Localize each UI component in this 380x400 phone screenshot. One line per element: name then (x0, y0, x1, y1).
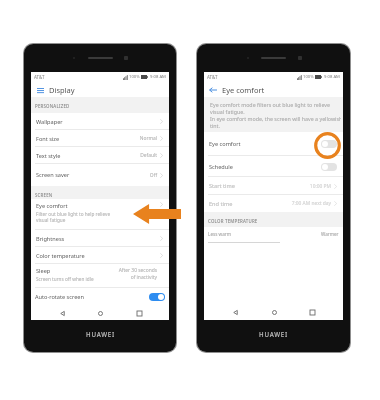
staticText: COLOR TEMPERATURE (208, 218, 258, 224)
button[interactable]: Back (208, 85, 218, 95)
button[interactable]: Color temperature (31, 247, 169, 264)
staticText: Display (49, 85, 75, 95)
staticText: Brightness (36, 235, 65, 243)
button[interactable]: Menu (35, 85, 45, 95)
staticText: Eye comfort mode filters out blue light … (210, 101, 341, 129)
button[interactable]: Text style (31, 147, 169, 164)
button[interactable]: Start time (204, 177, 343, 195)
staticText: Warmer (321, 231, 339, 237)
button[interactable]: Sleep (31, 264, 169, 288)
staticText: After 30 seconds of inactivity (118, 267, 157, 280)
button[interactable]: Recent apps (131, 306, 147, 320)
staticText: AT&T (207, 74, 218, 80)
staticText: HUAWEI (86, 330, 115, 338)
button[interactable]: Back (54, 306, 70, 320)
staticText: Color temperature (36, 252, 85, 260)
staticText: Less warm (208, 231, 231, 237)
staticText: PERSONALIZED (35, 103, 70, 109)
staticText: Eye comfort (222, 85, 265, 95)
staticText: Auto-rotate screen (35, 293, 149, 301)
staticText: 100% (303, 74, 314, 80)
button[interactable]: Font size (31, 130, 169, 147)
staticText: Sleep (36, 267, 51, 275)
staticText: HUAWEI (259, 330, 288, 338)
staticText: Default (140, 152, 157, 159)
button[interactable]: Eye comfort (204, 132, 343, 156)
button[interactable]: Schedule (204, 156, 343, 177)
staticText: Eye comfort (36, 202, 68, 210)
staticText: SCREEN (35, 192, 53, 198)
button[interactable]: Back (227, 305, 243, 320)
button[interactable]: Recent apps (304, 305, 320, 320)
button[interactable]: Screen saver (31, 164, 169, 186)
button[interactable]: Eye comfort (31, 199, 169, 230)
button[interactable]: End time (204, 195, 343, 212)
button[interactable]: Brightness (31, 230, 169, 247)
button[interactable]: Home (92, 306, 108, 320)
staticText: Filter out blue light to help relieve vi… (36, 211, 111, 223)
staticText: Screen turns off when idle (36, 276, 94, 282)
staticText: AT&T (34, 74, 45, 80)
staticText: 7:00 AM next day (291, 200, 331, 207)
staticText: End time (209, 200, 233, 208)
staticText: Schedule (209, 163, 321, 171)
button[interactable]: Auto-rotate screen (31, 288, 169, 306)
staticText: 100% (129, 74, 140, 80)
button[interactable]: Home (266, 305, 282, 320)
staticText: Eye comfort (209, 140, 321, 148)
staticText: Normal (139, 135, 157, 142)
staticText: Text style (36, 152, 61, 160)
staticText: Wallpaper (36, 118, 63, 126)
staticText: 9:08 AM (324, 74, 340, 80)
staticText: Screen saver (36, 171, 70, 179)
staticText: Off (149, 172, 157, 179)
button[interactable]: Wallpaper (31, 113, 169, 130)
staticText: 10:00 PM (309, 183, 331, 190)
staticText: Font size (36, 135, 60, 143)
staticText: Start time (209, 182, 235, 190)
staticText: 9:08 AM (150, 74, 166, 80)
